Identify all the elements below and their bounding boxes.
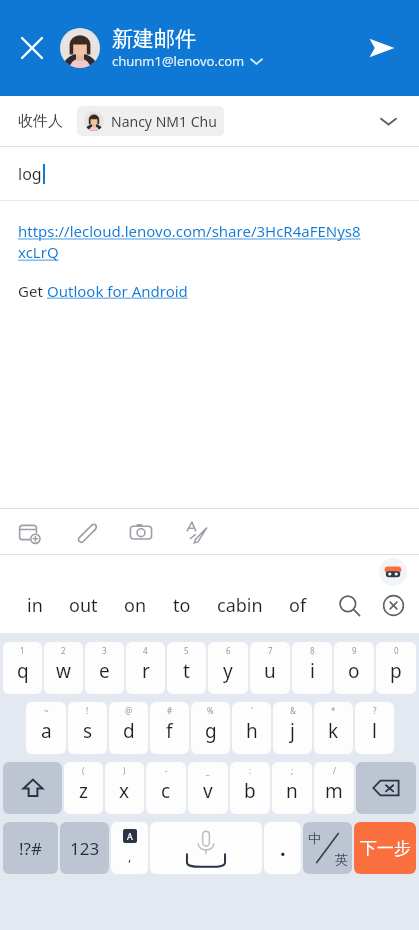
staticText: 中: [308, 830, 321, 846]
button[interactable]: [3, 762, 62, 814]
button[interactable]: 1: [3, 642, 42, 694]
button[interactable]: out: [56, 585, 111, 625]
staticText: !?#: [19, 837, 42, 860]
staticText: 新建邮件: [112, 26, 196, 52]
button[interactable]: /: [314, 762, 354, 814]
button[interactable]: 2: [44, 642, 83, 694]
button[interactable]: Assistant: [379, 558, 407, 586]
staticText: A: [127, 830, 133, 842]
staticText: Get: [18, 281, 47, 301]
button[interactable]: in: [14, 585, 56, 625]
staticText: cabin: [217, 593, 263, 618]
staticText: 5: [184, 645, 189, 656]
button[interactable]: log: [0, 147, 419, 200]
staticText: in: [27, 593, 43, 618]
button[interactable]: 收件人: [0, 96, 419, 146]
staticText: t: [183, 658, 190, 684]
button[interactable]: 4: [126, 642, 165, 694]
staticText: u: [264, 658, 276, 684]
staticText: g: [205, 718, 217, 744]
staticText: y: [223, 658, 233, 684]
staticText: 3: [102, 645, 107, 656]
button[interactable]: to: [160, 585, 204, 625]
staticText: on: [124, 593, 147, 618]
staticText: a: [41, 718, 52, 744]
staticText: h: [246, 718, 258, 744]
button[interactable]: 9: [334, 642, 374, 694]
staticText: r: [142, 658, 150, 684]
button[interactable]: https://lecloud.lenovo.com/share/3HcR4aF…: [0, 201, 419, 508]
button[interactable]: ): [105, 762, 144, 814]
staticText: .: [280, 835, 286, 862]
staticText: @: [125, 705, 133, 716]
staticText: -: [165, 765, 168, 776]
staticText: j: [290, 718, 295, 744]
button[interactable]: *: [314, 702, 353, 754]
button[interactable]: _: [188, 762, 228, 814]
button[interactable]: @: [109, 702, 148, 754]
button[interactable]: Attach: [66, 513, 104, 551]
button[interactable]: %: [191, 702, 230, 754]
button[interactable]: 8: [292, 642, 332, 694]
button[interactable]: ;: [272, 762, 312, 814]
button[interactable]: 6: [208, 642, 248, 694]
button[interactable]: 0: [376, 642, 416, 694]
button[interactable]: !?#: [3, 822, 58, 874]
button[interactable]: Send: [359, 25, 405, 71]
button[interactable]: A: [111, 822, 148, 874]
button[interactable]: on: [111, 585, 160, 625]
button[interactable]: Search: [327, 583, 371, 627]
button[interactable]: 下一步: [354, 822, 416, 874]
button[interactable]: Expand recipients: [369, 102, 407, 140]
button[interactable]: ?: [355, 702, 394, 754]
button[interactable]: 中: [303, 822, 352, 874]
staticText: out: [69, 593, 98, 618]
button[interactable]: of: [276, 585, 320, 625]
button[interactable]: 123: [60, 822, 109, 874]
staticText: 收件人: [18, 112, 63, 131]
button[interactable]: https://lecloud.lenovo.com/share/3HcR4aF…: [18, 221, 361, 263]
staticText: 0: [394, 645, 399, 656]
button[interactable]: Close suggestions: [371, 583, 415, 627]
staticText: 英: [335, 851, 348, 867]
button[interactable]: 7: [250, 642, 290, 694]
button[interactable]: cabin: [204, 585, 276, 625]
staticText: i: [310, 658, 315, 684]
staticText: f: [166, 718, 173, 744]
button[interactable]: -: [146, 762, 186, 814]
staticText: q: [17, 658, 29, 684]
staticText: 9: [352, 645, 357, 656]
button[interactable]: Outlook for Android: [47, 281, 188, 301]
staticText: 123: [70, 837, 100, 860]
staticText: ;: [291, 765, 294, 776]
staticText: (: [82, 765, 85, 776]
staticText: b: [244, 778, 256, 804]
button[interactable]: (: [64, 762, 103, 814]
button[interactable]: !: [68, 702, 107, 754]
button[interactable]: .: [264, 822, 301, 874]
staticText: :: [249, 765, 252, 776]
button[interactable]: :: [230, 762, 270, 814]
button[interactable]: Draw: [178, 513, 216, 551]
staticText: log: [18, 163, 42, 185]
button[interactable]: 5: [167, 642, 206, 694]
button[interactable]: &: [273, 702, 312, 754]
button[interactable]: Add file: [10, 513, 48, 551]
button[interactable]: #: [150, 702, 189, 754]
staticText: /: [333, 765, 336, 776]
staticText: k: [328, 718, 339, 744]
button[interactable]: ~: [26, 702, 66, 754]
staticText: #: [167, 705, 173, 716]
staticText: 6: [226, 645, 231, 656]
staticText: 8: [310, 645, 315, 656]
staticText: ~: [44, 705, 49, 716]
button[interactable]: Nancy NM1 Chu: [77, 106, 224, 136]
button[interactable]: ': [232, 702, 271, 754]
button[interactable]: Close: [10, 26, 54, 70]
button[interactable]: [150, 822, 262, 874]
button[interactable]: 3: [85, 642, 124, 694]
staticText: c: [161, 778, 171, 804]
staticText: d: [123, 718, 135, 744]
button[interactable]: [356, 762, 416, 814]
button[interactable]: Camera: [122, 513, 160, 551]
